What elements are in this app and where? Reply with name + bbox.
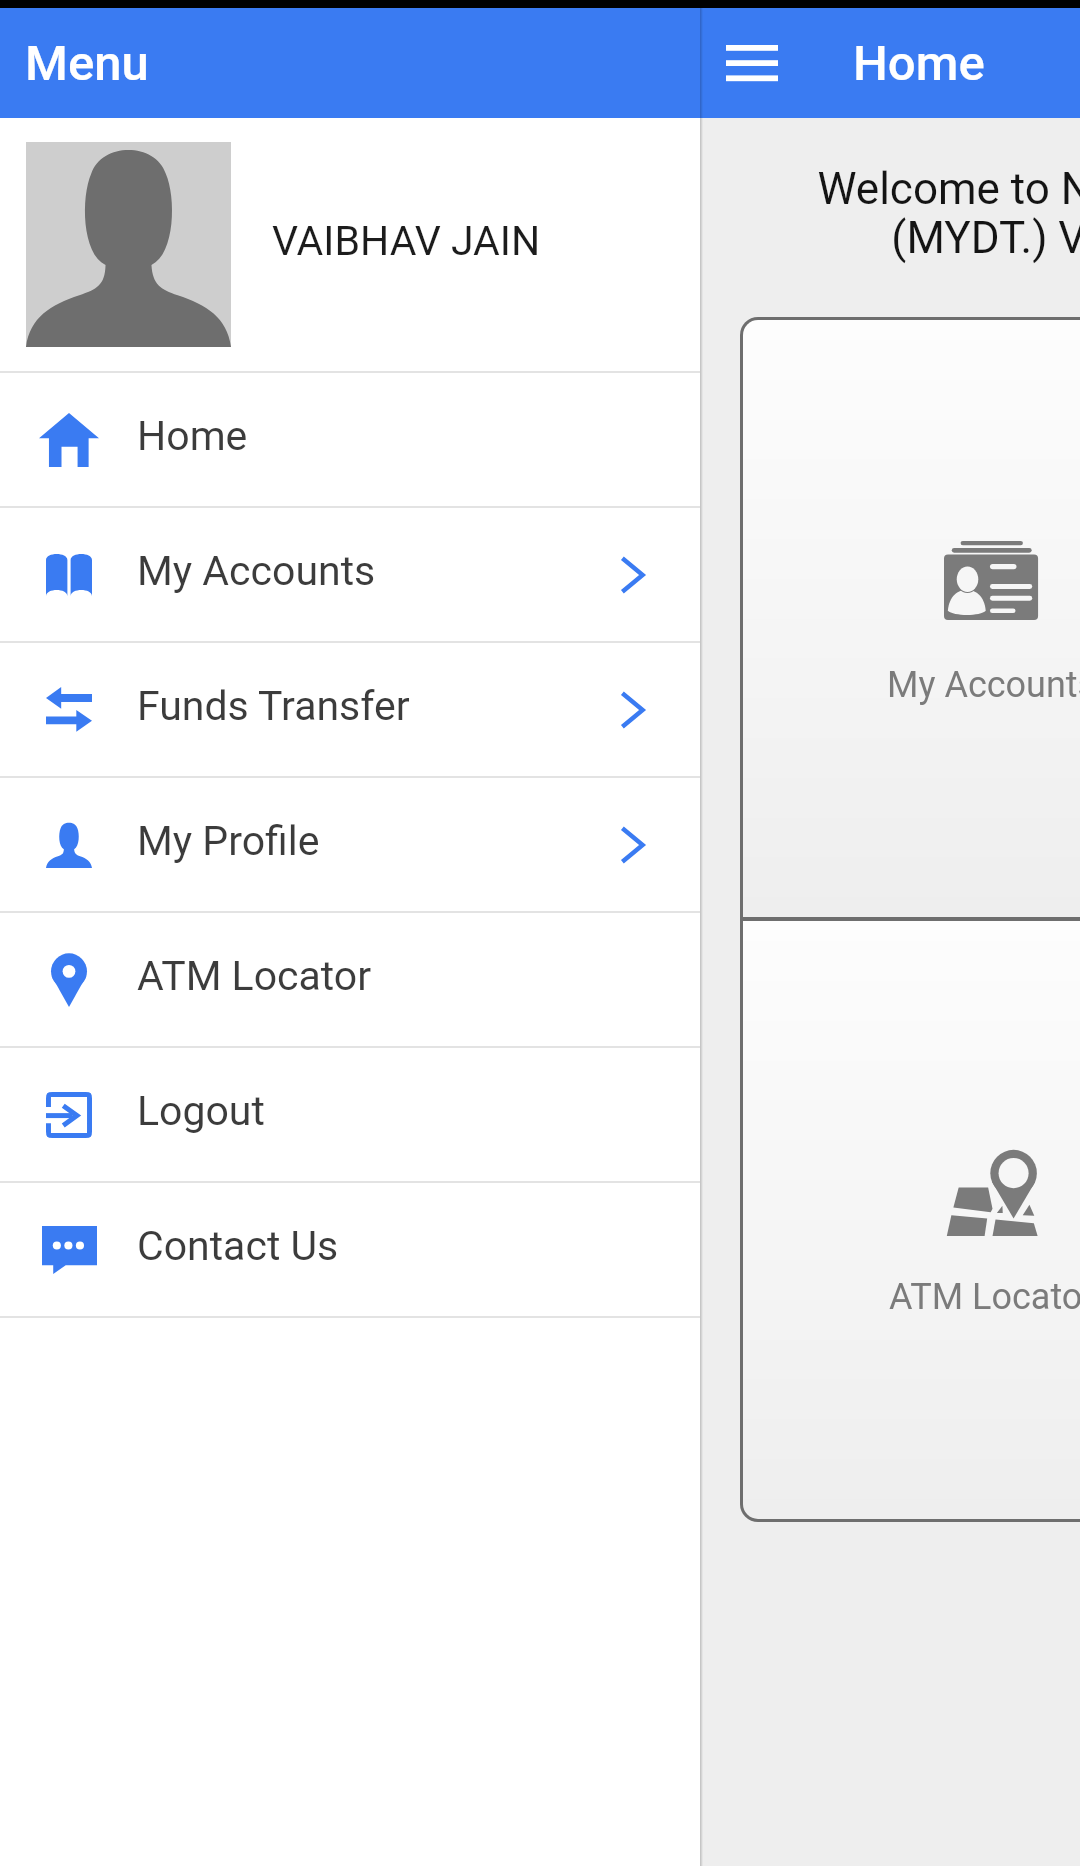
button[interactable]: Funds Transfer (0, 643, 700, 776)
button[interactable]: Home (0, 373, 700, 506)
button[interactable]: My Accounts (0, 508, 700, 641)
staticText: My Accounts (887, 664, 1080, 706)
staticText: ATM Locator (889, 1276, 1080, 1318)
staticText: My Accounts (137, 547, 376, 595)
button[interactable]: Logout (0, 1048, 700, 1181)
button[interactable]: VAIBHAV JAIN (0, 118, 700, 371)
staticText: Home (853, 35, 985, 92)
staticText: Funds Transfer (137, 682, 410, 730)
button[interactable]: ATM Locator (743, 921, 1080, 1519)
staticText: VAIBHAV JAIN (272, 217, 541, 265)
staticText: Welcome to NAVKAR URBAN CO-OP BANK. (MYD… (700, 163, 1080, 264)
button[interactable]: My Profile (0, 778, 700, 911)
staticText: ATM Locator (137, 952, 372, 1000)
button[interactable]: Open navigation drawer (712, 23, 792, 103)
staticText: Home (137, 412, 248, 460)
staticText: Contact Us (137, 1222, 339, 1270)
staticText: My Profile (137, 817, 320, 865)
staticText: Logout (137, 1087, 265, 1135)
staticText: Menu (25, 35, 149, 92)
button[interactable]: My Accounts (743, 320, 1080, 917)
button[interactable]: ATM Locator (0, 913, 700, 1046)
button[interactable]: Contact Us (0, 1183, 700, 1316)
